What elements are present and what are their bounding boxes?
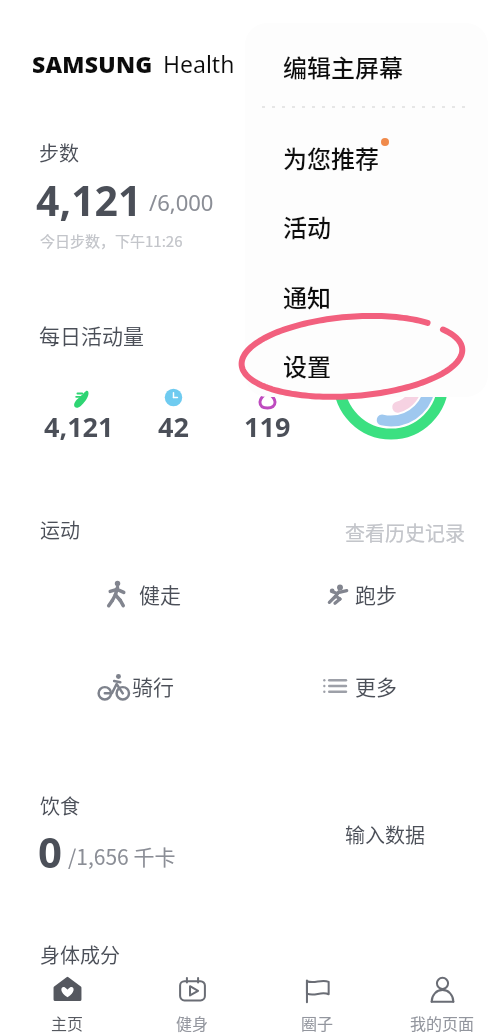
button[interactable]: 健身 — [130, 968, 255, 1034]
button[interactable]: 编辑主屏幕 — [245, 35, 488, 89]
button[interactable]: 圈子 — [255, 968, 380, 1034]
staticText: /1,656 千卡 — [68, 841, 176, 871]
staticText: 编辑主屏幕 — [283, 49, 403, 84]
staticText: 主页 — [51, 1011, 84, 1034]
staticText: 圈子 — [301, 1011, 334, 1034]
button[interactable]: 我的页面 — [380, 968, 500, 1034]
staticText: /6,000 — [149, 187, 214, 217]
staticText: 输入数据 — [345, 820, 425, 849]
button[interactable]: 119 — [222, 387, 312, 449]
staticText: 饮食 — [40, 791, 80, 820]
staticText: 今日步数，下午11:26 — [40, 230, 183, 252]
staticText: 查看历史记录 — [345, 518, 465, 547]
button[interactable]: 健走 — [104, 578, 181, 610]
staticText: 119 — [244, 408, 291, 445]
staticText: 为您推荐 — [283, 140, 379, 175]
staticText: 身体成分 — [40, 940, 120, 969]
button[interactable]: 4,121 — [34, 387, 124, 449]
button[interactable]: 主页 — [5, 968, 130, 1034]
staticText: 活动 — [283, 209, 331, 244]
staticText: 我的页面 — [410, 1011, 475, 1034]
staticText: SAMSUNG — [32, 48, 153, 79]
staticText: 4,121 — [36, 172, 142, 228]
staticText: 0 — [38, 823, 63, 880]
staticText: 健走 — [139, 579, 181, 609]
staticText: Health — [163, 48, 235, 79]
button[interactable]: 骑行 — [98, 670, 174, 702]
staticText: 每日活动量 — [39, 320, 144, 350]
button[interactable]: 42 — [128, 387, 218, 449]
staticText: 更多 — [355, 671, 397, 701]
button[interactable]: 跑步 — [326, 578, 397, 610]
button[interactable]: 设置 — [245, 334, 488, 388]
button[interactable]: 为您推荐 — [245, 126, 488, 180]
staticText: 4,121 — [44, 408, 114, 445]
staticText: 健身 — [176, 1011, 209, 1034]
staticText: 42 — [158, 408, 189, 445]
button[interactable]: 活动 — [245, 195, 488, 249]
button[interactable]: 通知 — [245, 265, 488, 319]
button[interactable]: 查看历史记录 — [337, 514, 473, 551]
button[interactable]: 更多 — [322, 670, 397, 702]
staticText: 步数 — [39, 138, 79, 167]
button[interactable]: 输入数据 — [337, 816, 433, 853]
staticText: 通知 — [283, 279, 331, 314]
staticText: 设置 — [283, 348, 331, 383]
staticText: 运动 — [40, 515, 80, 544]
staticText: 跑步 — [355, 579, 397, 609]
staticText: 骑行 — [132, 671, 174, 701]
